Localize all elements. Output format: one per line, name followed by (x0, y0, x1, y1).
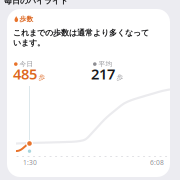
staticText: 歩 (38, 73, 45, 81)
staticText: 6:08 (150, 158, 164, 167)
staticText: 歩数 (20, 15, 34, 23)
staticText: 1:30 (23, 158, 37, 167)
staticText: 485 (13, 64, 37, 83)
staticText: 歩 (116, 73, 123, 81)
staticText: 平均 (99, 60, 113, 68)
staticText: 217 (91, 64, 115, 83)
staticText: これまでの歩数は通常より多くなっています。 (13, 28, 149, 48)
staticText: 毎日のハイライト (4, 0, 68, 6)
staticText: 今日 (20, 60, 34, 68)
